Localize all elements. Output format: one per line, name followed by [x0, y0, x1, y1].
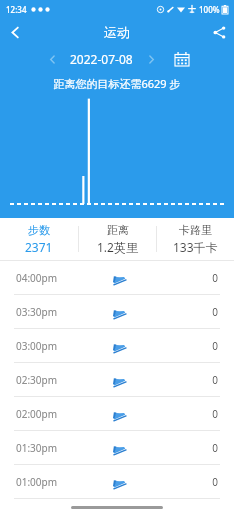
staticText: 距离: [107, 223, 129, 237]
staticText: 01:00pm: [16, 475, 84, 489]
button[interactable]: Share: [204, 18, 234, 46]
button[interactable]: 02:30pm: [0, 363, 234, 396]
staticText: 运动: [104, 24, 130, 40]
button[interactable]: 距离: [79, 218, 156, 260]
staticText: 0: [151, 271, 218, 285]
staticText: 步数: [28, 223, 50, 237]
staticText: 02:00pm: [16, 407, 84, 421]
staticText: 2371: [25, 239, 53, 255]
button[interactable]: 01:30pm: [0, 431, 234, 464]
staticText: 03:00pm: [16, 339, 84, 353]
button[interactable]: 04:00pm: [0, 261, 234, 294]
button[interactable]: Back: [0, 18, 30, 46]
staticText: 2022-07-08: [70, 51, 133, 67]
staticText: 0: [151, 305, 218, 319]
staticText: 100%: [199, 4, 220, 15]
staticText: 0: [151, 373, 218, 387]
button[interactable]: 03:30pm: [0, 295, 234, 328]
staticText: 02:30pm: [16, 373, 84, 387]
staticText: 01:30pm: [16, 441, 84, 455]
button[interactable]: 03:00pm: [0, 329, 234, 362]
staticText: 0: [151, 475, 218, 489]
button[interactable]: 02:00pm: [0, 397, 234, 430]
staticText: 卡路里: [179, 223, 212, 237]
staticText: 03:30pm: [16, 305, 84, 319]
button[interactable]: Previous day: [42, 49, 62, 69]
staticText: 0: [151, 407, 218, 421]
button[interactable]: Next day: [141, 49, 161, 69]
staticText: 133千卡: [173, 239, 218, 255]
staticText: 1.2英里: [97, 239, 138, 255]
button[interactable]: 步数: [0, 218, 78, 260]
staticText: 12:34: [6, 4, 27, 15]
staticText: 04:00pm: [16, 271, 84, 285]
staticText: 0: [151, 339, 218, 353]
button[interactable]: 卡路里: [157, 218, 234, 260]
staticText: 距离您的目标还需6629 步: [0, 76, 234, 91]
button[interactable]: Pick date: [171, 48, 193, 70]
button[interactable]: 01:00pm: [0, 465, 234, 498]
staticText: 0: [151, 441, 218, 455]
